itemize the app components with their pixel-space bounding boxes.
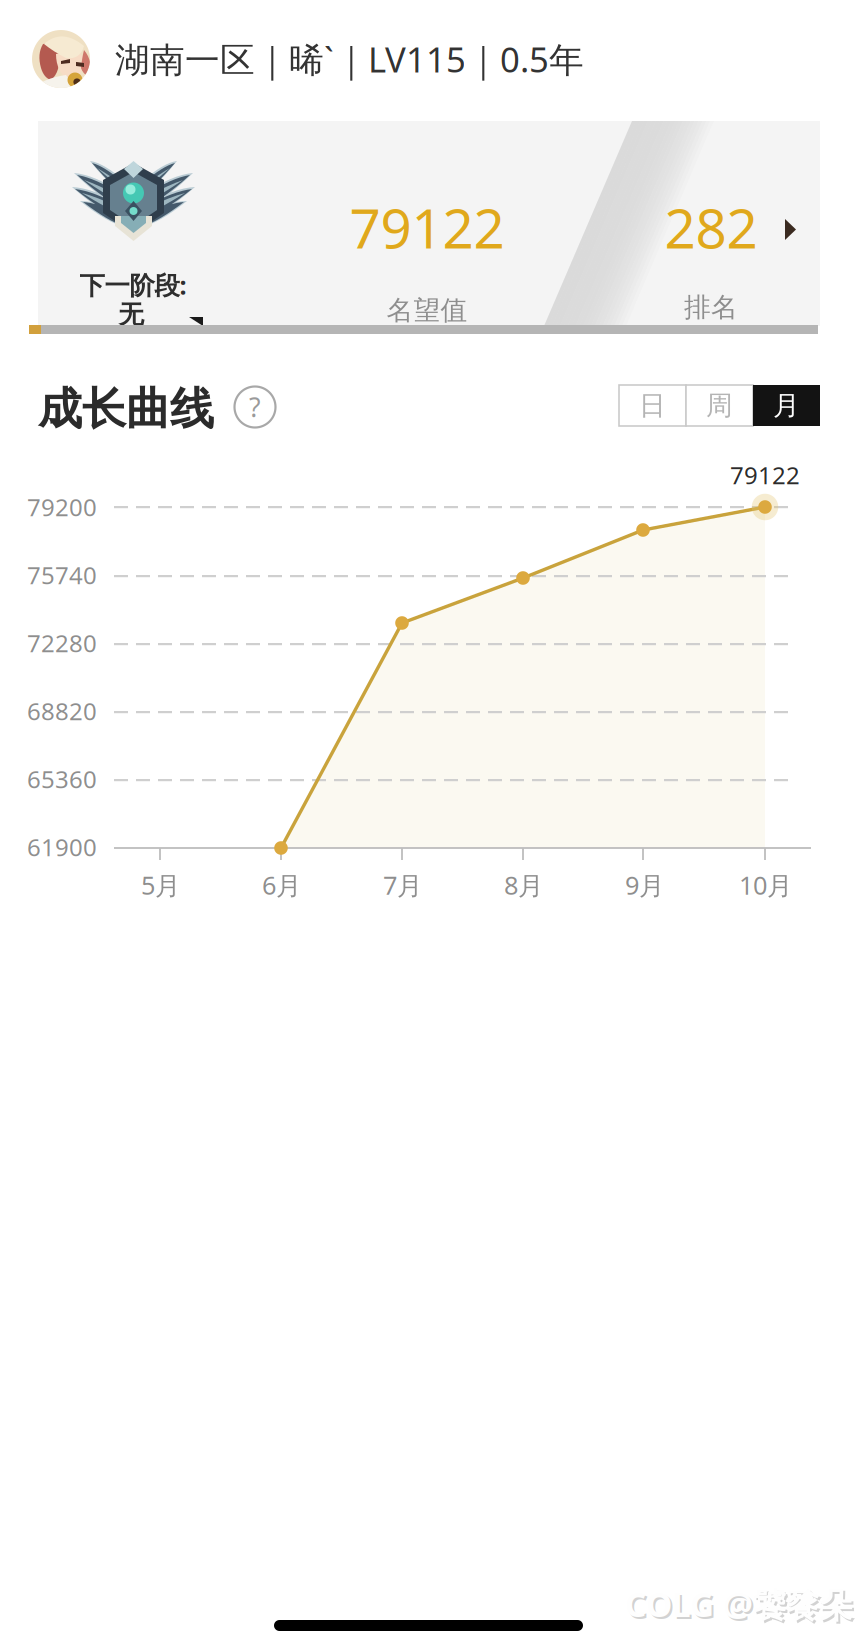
staticText: 月: [773, 389, 800, 422]
staticText: 日: [639, 389, 666, 422]
staticText: 无: [118, 299, 143, 330]
staticText: 8月: [504, 868, 543, 902]
staticText: 下一阶段:: [79, 268, 186, 302]
staticText: 排名: [684, 291, 738, 324]
staticText: 9月: [625, 868, 664, 902]
staticText: 79200: [27, 491, 97, 523]
staticText: 75740: [27, 559, 97, 591]
staticText: 7月: [383, 868, 422, 902]
staticText: 61900: [27, 831, 97, 863]
staticText: 65360: [27, 763, 97, 795]
staticText: 6月: [262, 868, 301, 902]
staticText: 湖南一区｜晞`｜LV115｜0.5年: [115, 36, 584, 82]
staticText: COLG @饕餮朵: [627, 1584, 854, 1628]
staticText: COLG @饕餮朵: [625, 1582, 852, 1626]
button[interactable]: 周: [686, 385, 753, 426]
staticText: 68820: [27, 695, 97, 727]
staticText: 10月: [739, 868, 792, 902]
staticText: 79122: [349, 191, 504, 264]
staticText: 周: [706, 389, 733, 422]
button[interactable]: 日: [619, 385, 686, 426]
staticText: 79122: [730, 459, 800, 491]
staticText: 名望值: [386, 294, 467, 327]
staticText: 72280: [27, 627, 97, 659]
button[interactable]: 月: [753, 385, 820, 426]
button[interactable]: 湖南一区｜晞`｜LV115｜0.5年: [0, 0, 856, 118]
staticText: ?: [249, 389, 261, 425]
staticText: 成长曲线: [38, 382, 214, 436]
button[interactable]: 成长曲线说明: [231, 383, 279, 431]
staticText: 282: [664, 191, 757, 264]
staticText: 5月: [141, 868, 180, 902]
button[interactable]: 下一阶段:: [38, 121, 820, 326]
